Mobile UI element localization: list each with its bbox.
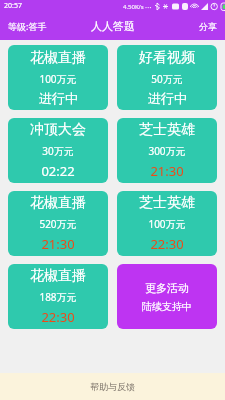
- staticText: 芝士英雄: [139, 194, 195, 212]
- staticText: 冲顶大会: [30, 121, 86, 139]
- staticText: 520万元: [39, 217, 77, 231]
- button[interactable]: 花椒直播: [8, 191, 108, 256]
- staticText: 20:57: [4, 1, 22, 11]
- staticText: 更多活动: [145, 281, 189, 295]
- staticText: 花椒直播: [30, 49, 86, 67]
- staticText: 100万元: [39, 72, 77, 86]
- staticText: 等级:答手: [8, 20, 47, 32]
- other: Status icons: [146, 1, 222, 12]
- staticText: 进行中: [148, 90, 187, 106]
- button[interactable]: 好看视频: [117, 45, 217, 110]
- staticText: 22:30: [41, 308, 75, 326]
- staticText: 进行中: [39, 90, 78, 106]
- staticText: 人人答题: [91, 19, 135, 33]
- button[interactable]: 冲顶大会: [8, 118, 108, 183]
- button[interactable]: 花椒直播: [8, 45, 108, 110]
- staticText: 4.50K/s: [123, 3, 144, 11]
- staticText: 02:22: [41, 162, 75, 180]
- staticText: 30万元: [42, 144, 74, 158]
- staticText: 50万元: [151, 72, 183, 86]
- staticText: 21:30: [41, 235, 75, 253]
- button[interactable]: 芝士英雄: [117, 118, 217, 183]
- button[interactable]: 更多活动: [117, 264, 217, 329]
- button[interactable]: 分享: [191, 16, 225, 37]
- staticText: 188万元: [39, 290, 77, 304]
- button[interactable]: 等级:答手: [0, 15, 55, 37]
- staticText: 300万元: [148, 144, 186, 158]
- staticText: 好看视频: [139, 49, 195, 67]
- staticText: 帮助与反馈: [90, 381, 135, 392]
- staticText: 分享: [199, 21, 217, 32]
- staticText: 花椒直播: [30, 267, 86, 285]
- button[interactable]: 帮助与反馈: [0, 373, 225, 400]
- staticText: 22:30: [150, 235, 184, 253]
- staticText: 花椒直播: [30, 194, 86, 212]
- staticText: 100万元: [148, 217, 186, 231]
- staticText: 21:30: [150, 162, 184, 180]
- button[interactable]: 花椒直播: [8, 264, 108, 329]
- staticText: 陆续支持中: [142, 300, 192, 313]
- button[interactable]: 芝士英雄: [117, 191, 217, 256]
- staticText: 芝士英雄: [139, 121, 195, 139]
